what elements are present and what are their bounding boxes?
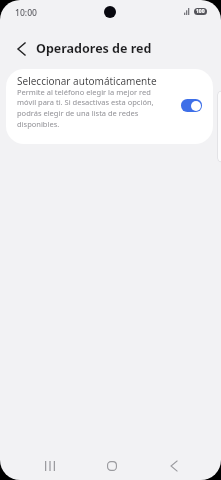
button[interactable]: Home [81, 451, 143, 480]
staticText: 10:00 [15, 7, 38, 19]
staticText: Permite al teléfono elegir la mejor red … [17, 87, 157, 130]
button[interactable]: Seleccionar automáticamente [6, 69, 213, 144]
staticText: Seleccionar automáticamente [17, 74, 157, 88]
button[interactable]: Back [8, 35, 35, 62]
button[interactable]: Back [143, 451, 205, 480]
button[interactable]: Seleccionar automaticamente [181, 99, 202, 112]
staticText: 100 [196, 8, 205, 15]
staticText: Operadores de red [36, 40, 152, 57]
button[interactable]: Recent apps [19, 451, 81, 480]
